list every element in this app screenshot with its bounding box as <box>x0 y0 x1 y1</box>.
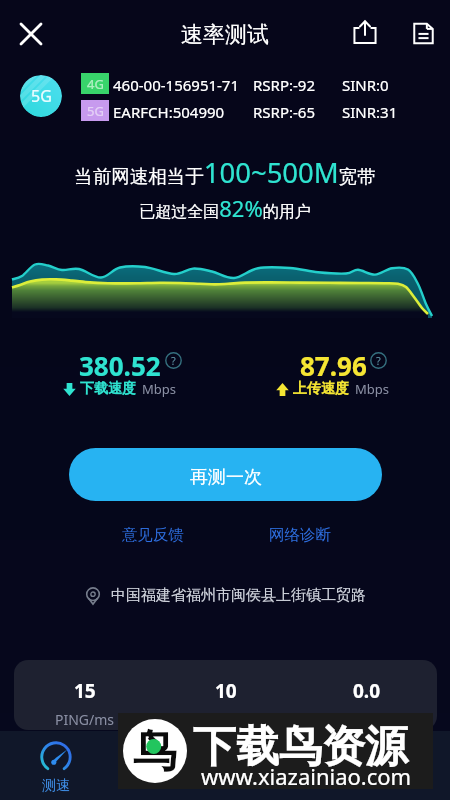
staticText: 下载速度 <box>80 380 136 398</box>
button[interactable]: Share <box>343 10 387 54</box>
staticText: 上传速度 <box>293 380 349 398</box>
button[interactable]: Close <box>9 12 53 56</box>
staticText: 5G <box>31 85 52 107</box>
staticText: RSRP:-92 <box>253 75 315 95</box>
staticText: SINR:31 <box>342 102 398 122</box>
button[interactable]: Records <box>401 11 445 55</box>
button[interactable]: 意见反馈 <box>122 525 184 545</box>
staticText: 15 <box>74 678 96 704</box>
staticText: PING/ms <box>55 710 115 729</box>
staticText: EARFCH:504990 <box>113 102 225 122</box>
staticText: 意见反馈 <box>122 525 184 545</box>
staticText: 网络诊断 <box>269 525 331 545</box>
staticText: 下载鸟资源 <box>193 720 408 774</box>
button[interactable]: 网络诊断 <box>269 525 331 545</box>
staticText: 460-00-156951-71 <box>113 75 240 95</box>
staticText: SINR:0 <box>342 75 389 95</box>
staticText: RSRP:-65 <box>253 102 315 122</box>
button[interactable]: Help <box>165 352 182 369</box>
staticText: ? <box>171 353 176 368</box>
staticText: 中国福建省福州市闽侯县上街镇工贸路 <box>111 586 366 605</box>
staticText: 已超过全国82%的用户 <box>139 193 311 223</box>
staticText: 380.52 <box>79 348 161 383</box>
staticText: 鸟 <box>133 724 177 779</box>
button[interactable]: 再测一次 <box>69 448 382 501</box>
staticText: www.xiazainiao.com <box>201 761 412 791</box>
staticText: 抖动/ms <box>199 710 253 729</box>
staticText: 当前网速相当于100~500M宽带 <box>74 154 376 191</box>
staticText: 87.96 <box>300 348 367 383</box>
staticText: 再测一次 <box>190 466 262 489</box>
button[interactable]: Help <box>370 352 387 369</box>
staticText: 0.0 <box>353 678 381 704</box>
staticText: 测速 <box>42 777 70 795</box>
button[interactable]: 测速 <box>2 731 110 795</box>
staticText: Mbps <box>142 380 177 398</box>
staticText: 4G <box>87 75 104 93</box>
staticText: 5G <box>87 102 104 120</box>
staticText: 丢包率/% <box>337 710 396 729</box>
staticText: 速率测试 <box>181 21 269 49</box>
staticText: 10 <box>215 678 237 704</box>
staticText: Mbps <box>355 380 390 398</box>
staticText: ? <box>376 353 381 368</box>
